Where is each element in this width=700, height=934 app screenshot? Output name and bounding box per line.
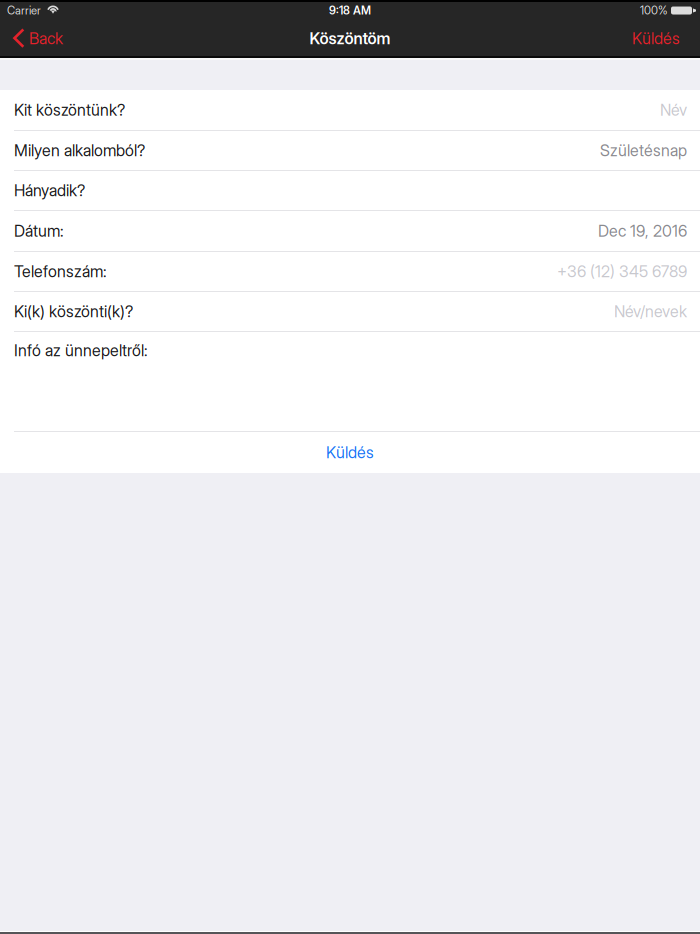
staticText: Dec 19, 2016 [598,221,687,241]
staticText: Köszöntöm [309,29,390,48]
staticText: 9:18 AM [329,4,371,17]
staticText: Küldés [326,443,374,462]
button[interactable]: Küldés [0,432,700,473]
staticText: +36 (12) 345 6789 [557,262,687,281]
staticText: Telefonszám: [14,262,107,281]
button[interactable]: Back [0,20,73,56]
staticText: Ki(k) köszönti(k)? [14,302,133,321]
button[interactable]: Kit köszöntünk? [0,90,700,131]
button[interactable]: Küldés [622,20,700,56]
staticText: Dátum: [14,221,64,241]
staticText: Back [29,29,63,48]
staticText: Milyen alkalomból? [14,141,145,160]
staticText: 100% [640,4,668,17]
staticText: Carrier [7,4,41,17]
button[interactable]: Infó az ünnepeltről: [0,332,700,432]
staticText: Küldés [632,29,680,48]
staticText: Név/nevek [614,302,687,321]
staticText: Név [660,100,687,120]
staticText: Hányadik? [14,181,85,200]
button[interactable]: Telefonszám: [0,252,700,292]
button[interactable]: Ki(k) köszönti(k)? [0,292,700,332]
staticText: Születésnap [600,141,687,160]
staticText: Infó az ünnepeltről: [14,341,148,360]
button[interactable]: Milyen alkalomból? [0,131,700,171]
button[interactable]: Hányadik? [0,171,700,211]
button[interactable]: Dátum: [0,211,700,252]
staticText: Kit köszöntünk? [14,100,125,120]
